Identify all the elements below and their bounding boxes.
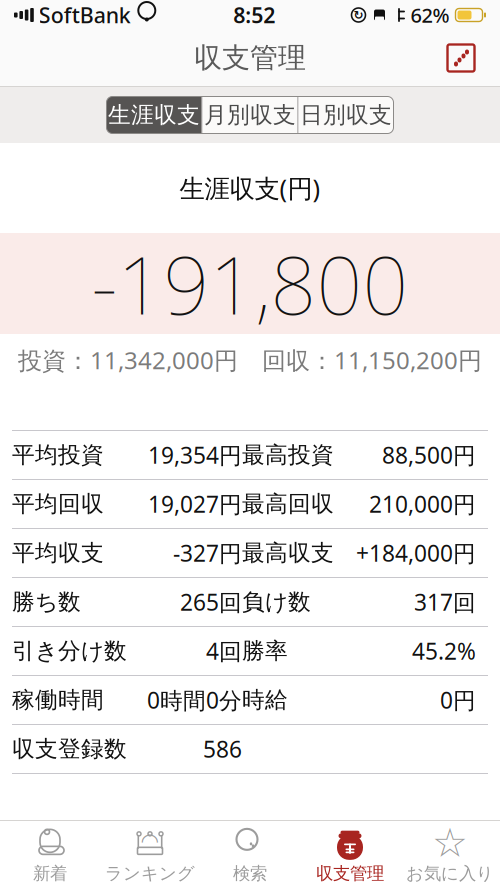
- staticText: 収支管理: [316, 863, 384, 884]
- button[interactable]: ☆: [400, 821, 500, 889]
- staticText: 生涯収支: [108, 101, 200, 129]
- staticText: 45.2%: [412, 636, 476, 666]
- button[interactable]: 検索: [200, 821, 300, 889]
- staticText: 0時間0分: [147, 685, 242, 715]
- staticText: 月別収支: [204, 101, 296, 129]
- staticText: 62%: [410, 2, 449, 28]
- staticText: 投資：11,342,000円 回収：11,150,200円: [18, 344, 482, 376]
- staticText: 検索: [233, 863, 267, 884]
- staticText: 生涯収支(円): [179, 171, 320, 205]
- button[interactable]: ◠: [100, 821, 200, 889]
- staticText: ☆: [432, 820, 468, 866]
- button[interactable]: 生涯収支: [106, 96, 201, 133]
- staticText: 日別収支: [300, 101, 392, 129]
- staticText: ↻: [353, 8, 363, 22]
- staticText: 19,354円: [148, 440, 242, 470]
- staticText: 最高収支: [242, 539, 334, 567]
- staticText: 収支登録数: [12, 735, 127, 763]
- button[interactable]: 月別収支: [202, 96, 297, 133]
- staticText: ◠: [140, 829, 159, 853]
- staticText: 収支管理: [194, 41, 306, 75]
- staticText: ランキング: [105, 863, 195, 884]
- staticText: +184,000円: [356, 538, 476, 568]
- staticText: 最高投資: [242, 441, 334, 469]
- staticText: 586: [203, 734, 242, 764]
- staticText: 引き分け数: [12, 637, 127, 665]
- staticText: 平均回収: [12, 490, 104, 518]
- staticText: 勝ち数: [12, 588, 81, 616]
- staticText: SoftBank: [39, 1, 131, 29]
- staticText: 0円: [440, 685, 476, 715]
- staticText: 時給: [242, 686, 288, 714]
- staticText: 稼働時間: [12, 686, 104, 714]
- staticText: 最高回収: [242, 490, 334, 518]
- staticText: 317回: [414, 587, 476, 617]
- staticText: 4回: [206, 636, 242, 666]
- button[interactable]: 収支管理: [300, 821, 400, 889]
- button[interactable]: 新着: [0, 821, 100, 889]
- staticText: 平均収支: [12, 539, 104, 567]
- staticText: 88,500円: [382, 440, 476, 470]
- staticText: -191,800: [91, 230, 408, 337]
- staticText: 19,027円: [148, 489, 242, 519]
- staticText: お気に入り: [406, 863, 494, 884]
- staticText: -327円: [173, 538, 242, 568]
- staticText: 勝率: [242, 637, 288, 665]
- staticText: 平均投資: [12, 441, 104, 469]
- button[interactable]: 新規作成: [434, 35, 488, 81]
- staticText: 210,000円: [369, 489, 476, 519]
- staticText: 8:52: [233, 1, 275, 29]
- button[interactable]: 日別収支: [298, 96, 393, 133]
- staticText: 265回: [180, 587, 242, 617]
- staticText: 負け数: [242, 588, 311, 616]
- staticText: 新着: [33, 863, 67, 884]
